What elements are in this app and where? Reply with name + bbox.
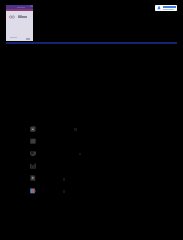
button[interactable]: Copy — [26, 123, 40, 135]
button[interactable]: Slides — [26, 148, 40, 160]
button[interactable]: Document — [26, 135, 40, 147]
button[interactable]: Presentation — [26, 185, 40, 197]
button[interactable]: Search — [26, 172, 40, 184]
button[interactable]: Sign in — [155, 5, 177, 11]
button[interactable]: Chart — [26, 160, 40, 172]
